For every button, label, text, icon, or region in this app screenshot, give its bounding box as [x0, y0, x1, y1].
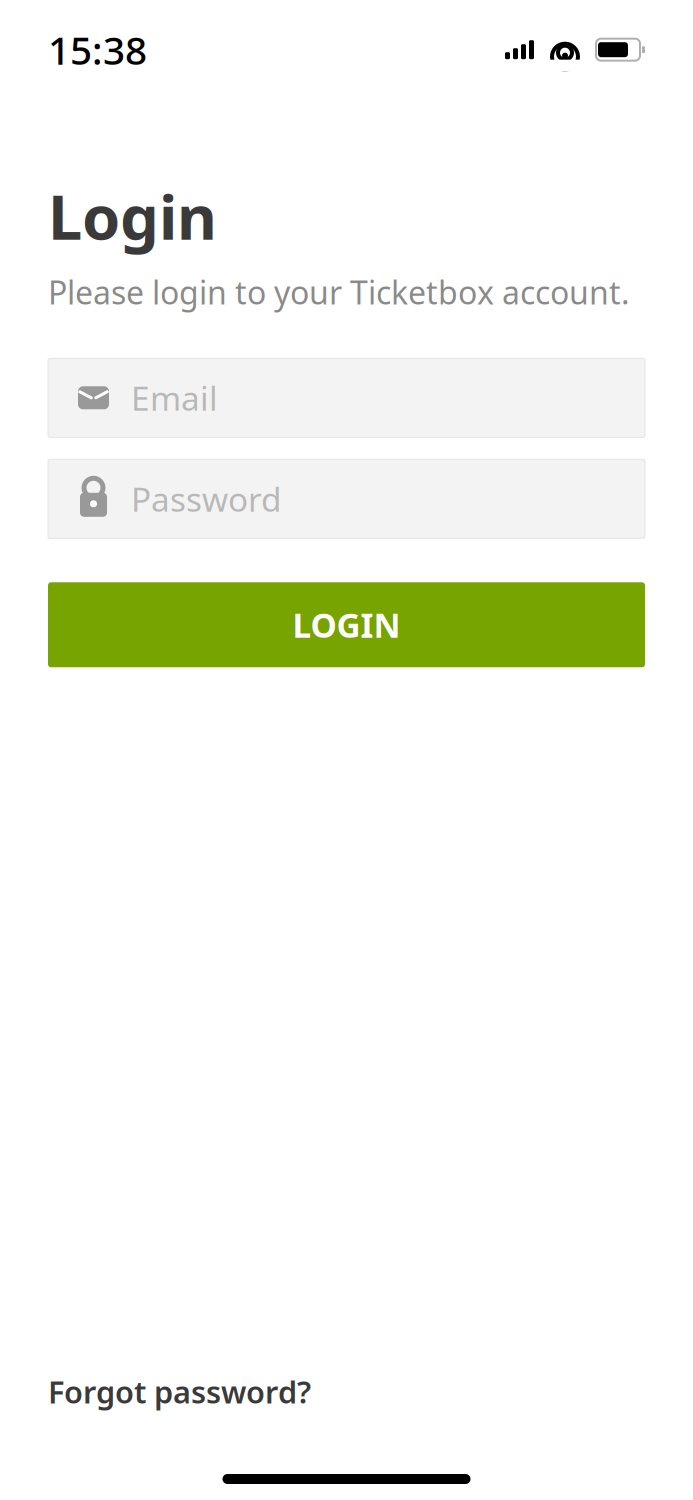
- staticText: Password: [131, 477, 282, 521]
- staticText: Please login to your Ticketbox account.: [48, 271, 630, 313]
- staticText: Forgot password?: [48, 1371, 311, 1412]
- staticText: 15:38: [48, 24, 147, 75]
- staticText: Login: [48, 175, 217, 257]
- staticText: Email: [131, 376, 218, 420]
- button[interactable]: Forgot password?: [48, 1371, 645, 1412]
- staticText: LOGIN: [292, 603, 400, 647]
- button[interactable]: LOGIN: [48, 582, 645, 667]
